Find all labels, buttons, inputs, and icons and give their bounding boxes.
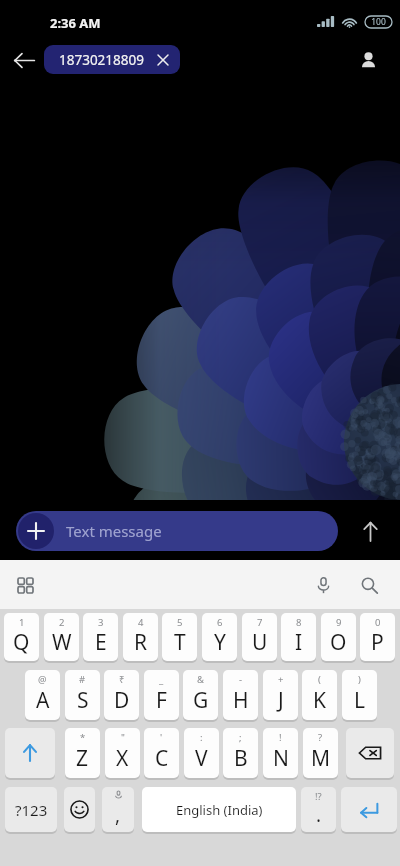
button[interactable]: & <box>183 670 218 720</box>
staticText: B <box>234 744 248 773</box>
button[interactable]: , <box>102 787 134 832</box>
staticText: 3 <box>98 616 104 629</box>
staticText: K <box>313 686 326 715</box>
staticText: ) <box>358 673 361 686</box>
button[interactable]: 5 <box>162 613 197 661</box>
staticText: ?123 <box>15 800 48 820</box>
button[interactable]: 9 <box>321 613 356 661</box>
staticText: ' <box>160 731 163 744</box>
button[interactable]: 8 <box>281 613 316 661</box>
staticText: & <box>197 673 204 686</box>
button[interactable]: ) <box>342 670 377 720</box>
staticText: 6 <box>217 616 223 629</box>
staticText: W <box>52 628 72 657</box>
button[interactable]: 1 <box>4 613 39 661</box>
button[interactable]: * <box>65 728 100 778</box>
button[interactable]: : <box>184 728 219 778</box>
staticText: " <box>121 731 125 744</box>
staticText: F <box>156 686 167 715</box>
button[interactable]: Clipboard <box>8 568 42 602</box>
staticText: , <box>115 802 121 828</box>
staticText: A <box>36 686 50 715</box>
button[interactable]: ( <box>302 670 337 720</box>
button[interactable]: @ <box>25 670 60 720</box>
staticText: - <box>239 673 243 686</box>
staticText: ₹ <box>119 673 125 686</box>
button[interactable]: 7 <box>242 613 277 661</box>
staticText: 100 <box>371 16 386 28</box>
button[interactable]: Shift <box>5 728 55 778</box>
button[interactable]: ₹ <box>104 670 139 720</box>
button[interactable]: ?123 <box>5 787 57 832</box>
button[interactable]: Enter <box>341 787 397 832</box>
button[interactable]: + <box>263 670 298 720</box>
staticText: H <box>233 686 249 715</box>
staticText: # <box>79 673 86 686</box>
button[interactable]: 2 <box>44 613 79 661</box>
staticText: X <box>116 744 129 773</box>
button[interactable]: Text message <box>16 511 338 551</box>
staticText: 0 <box>375 616 381 629</box>
staticText: _ <box>159 673 164 686</box>
button[interactable]: 3 <box>83 613 118 661</box>
staticText: V <box>195 744 208 773</box>
staticText: English (India) <box>176 801 263 819</box>
staticText: D <box>114 686 130 715</box>
button[interactable]: Back <box>6 42 42 78</box>
staticText: S <box>77 686 89 715</box>
staticText: ( <box>318 673 321 686</box>
staticText: L <box>354 686 366 715</box>
button[interactable]: ' <box>144 728 179 778</box>
staticText: ! <box>279 731 282 744</box>
staticText: @ <box>38 673 47 686</box>
staticText: M <box>311 744 331 773</box>
staticText: * <box>80 731 86 744</box>
staticText: Text message <box>66 521 162 541</box>
button[interactable]: 18730218809 <box>44 45 180 74</box>
button[interactable]: _ <box>144 670 179 720</box>
staticText: ; <box>239 731 242 744</box>
staticText: ? <box>318 731 323 744</box>
staticText: P <box>371 628 384 657</box>
button[interactable]: English (India) <box>142 787 296 832</box>
button[interactable]: - <box>223 670 258 720</box>
staticText: 4 <box>138 616 144 629</box>
staticText: Y <box>214 628 226 657</box>
staticText: : <box>200 731 203 744</box>
staticText: J <box>278 686 284 715</box>
staticText: T <box>174 628 186 657</box>
staticText: 2:36 AM <box>50 14 101 32</box>
button[interactable]: !? <box>301 787 336 832</box>
button[interactable]: Add contact <box>350 42 386 78</box>
button[interactable]: 0 <box>360 613 395 661</box>
staticText: 5 <box>177 616 183 629</box>
staticText: !? <box>315 790 322 803</box>
staticText: G <box>193 686 209 715</box>
staticText: I <box>295 628 303 657</box>
staticText: C <box>155 744 169 773</box>
button[interactable]: Search <box>352 568 386 602</box>
staticText: 1 <box>19 616 25 629</box>
button[interactable]: 4 <box>123 613 158 661</box>
button[interactable]: ? <box>303 728 338 778</box>
staticText: O <box>330 628 347 657</box>
staticText: R <box>134 628 148 657</box>
staticText: . <box>316 802 322 828</box>
staticText: Z <box>76 744 89 773</box>
staticText: U <box>252 628 268 657</box>
button[interactable]: ; <box>223 728 258 778</box>
button[interactable]: Emoji <box>64 787 95 832</box>
button[interactable]: 6 <box>202 613 237 661</box>
button[interactable]: ! <box>263 728 298 778</box>
staticText: Q <box>13 628 30 657</box>
staticText: E <box>95 628 107 657</box>
staticText: + <box>278 673 284 686</box>
button[interactable]: Backspace <box>346 728 394 778</box>
staticText: 2 <box>59 616 65 629</box>
button[interactable]: Voice input <box>306 568 340 602</box>
button[interactable]: # <box>65 670 100 720</box>
staticText: 9 <box>336 616 342 629</box>
staticText: 7 <box>257 616 263 629</box>
button[interactable]: Send <box>350 511 390 551</box>
button[interactable]: " <box>105 728 140 778</box>
